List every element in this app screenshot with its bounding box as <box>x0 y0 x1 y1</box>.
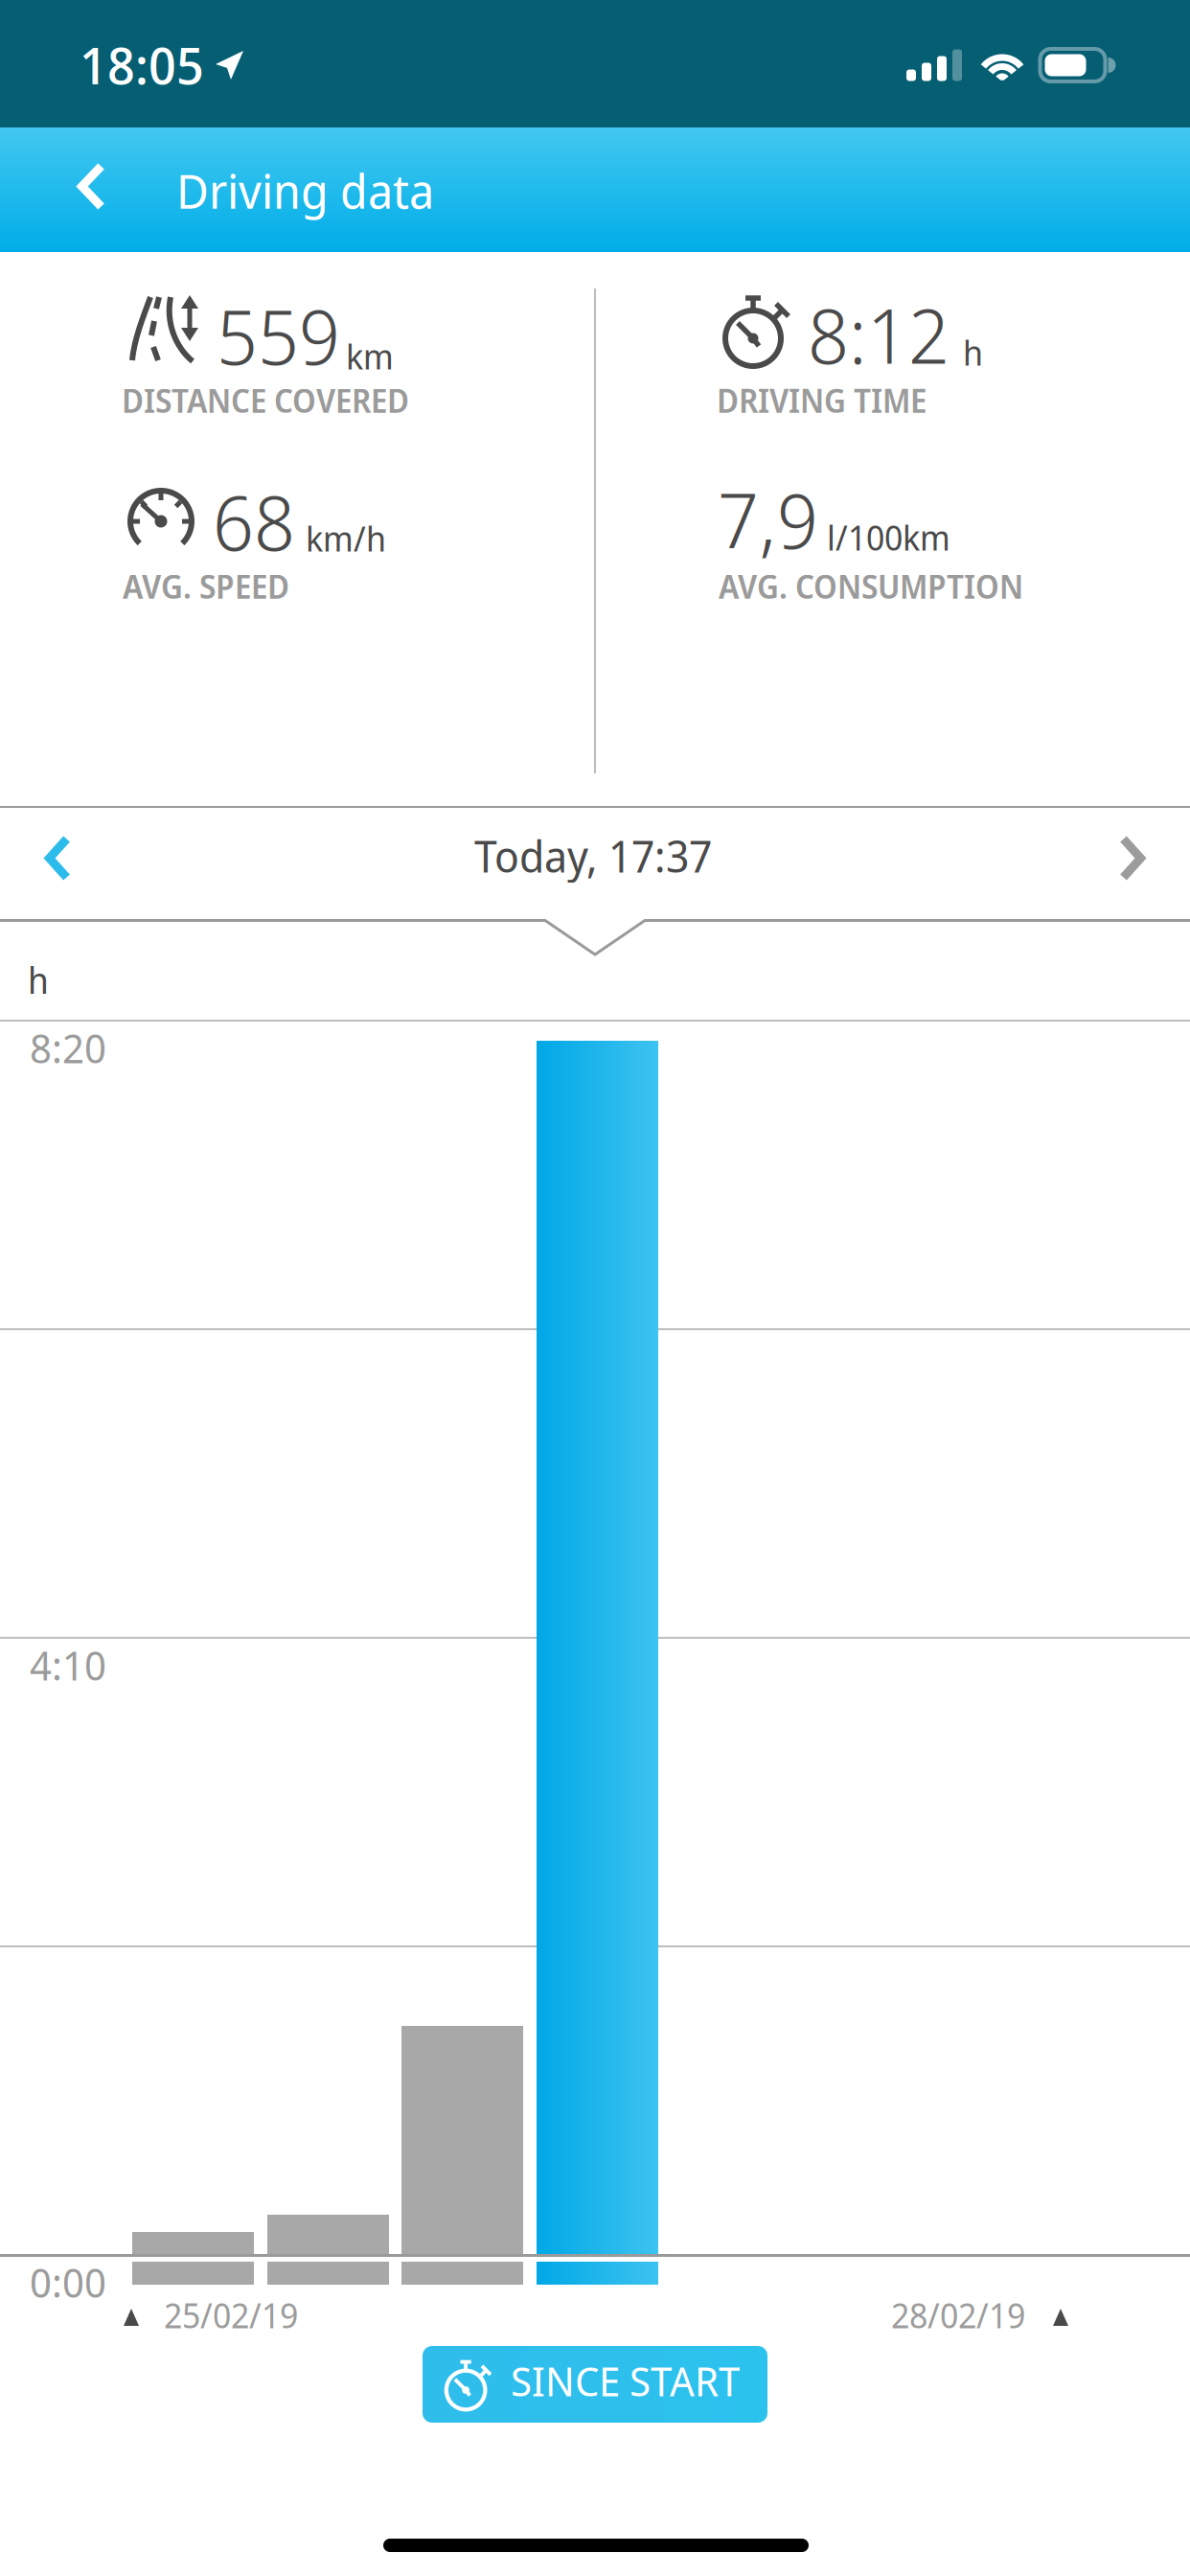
staticText: AVG. CONSUMPTION <box>719 564 1023 608</box>
staticText: h <box>963 329 983 376</box>
staticText: 18:05 <box>80 30 204 99</box>
staticText: DISTANCE COVERED <box>122 379 409 422</box>
staticText: 28/02/19 <box>891 2291 1025 2338</box>
staticText: l/100km <box>827 514 950 561</box>
button[interactable]: Next day <box>1058 813 1182 918</box>
staticText: Driving data <box>176 158 434 223</box>
button[interactable]: Previous day <box>8 813 132 918</box>
staticText: SINCE START <box>511 2353 740 2408</box>
staticText: 559 <box>217 283 340 387</box>
button[interactable]: SINCE START <box>423 2346 767 2423</box>
staticText: 7,9 <box>718 467 818 571</box>
staticText: AVG. SPEED <box>123 564 289 608</box>
staticText: 25/02/19 <box>164 2291 298 2338</box>
staticText: h <box>28 955 49 1004</box>
staticText: 4:10 <box>30 1637 106 1693</box>
staticText: km/h <box>306 515 386 562</box>
staticText: 0:00 <box>30 2254 106 2310</box>
staticText: DRIVING TIME <box>717 379 927 422</box>
staticText: 8:20 <box>30 1020 106 1075</box>
button[interactable]: Back to Driving data <box>0 127 479 252</box>
staticText: Today, 17:37 <box>474 826 712 885</box>
staticText: 8:12 <box>808 282 950 386</box>
staticText: 68 <box>213 469 295 573</box>
staticText: km <box>346 333 394 379</box>
